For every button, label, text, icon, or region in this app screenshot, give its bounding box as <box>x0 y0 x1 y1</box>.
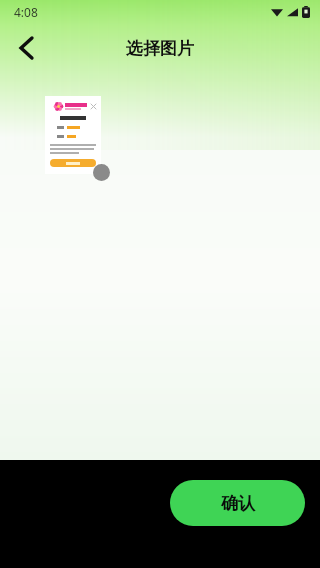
staticText: 选择图片 <box>126 38 194 59</box>
button[interactable]: Back <box>6 28 46 68</box>
button[interactable]: Select image <box>45 96 101 174</box>
staticText: 确认 <box>221 493 255 514</box>
staticText: 4:08 <box>14 4 38 20</box>
button[interactable]: 确认 <box>170 480 305 526</box>
